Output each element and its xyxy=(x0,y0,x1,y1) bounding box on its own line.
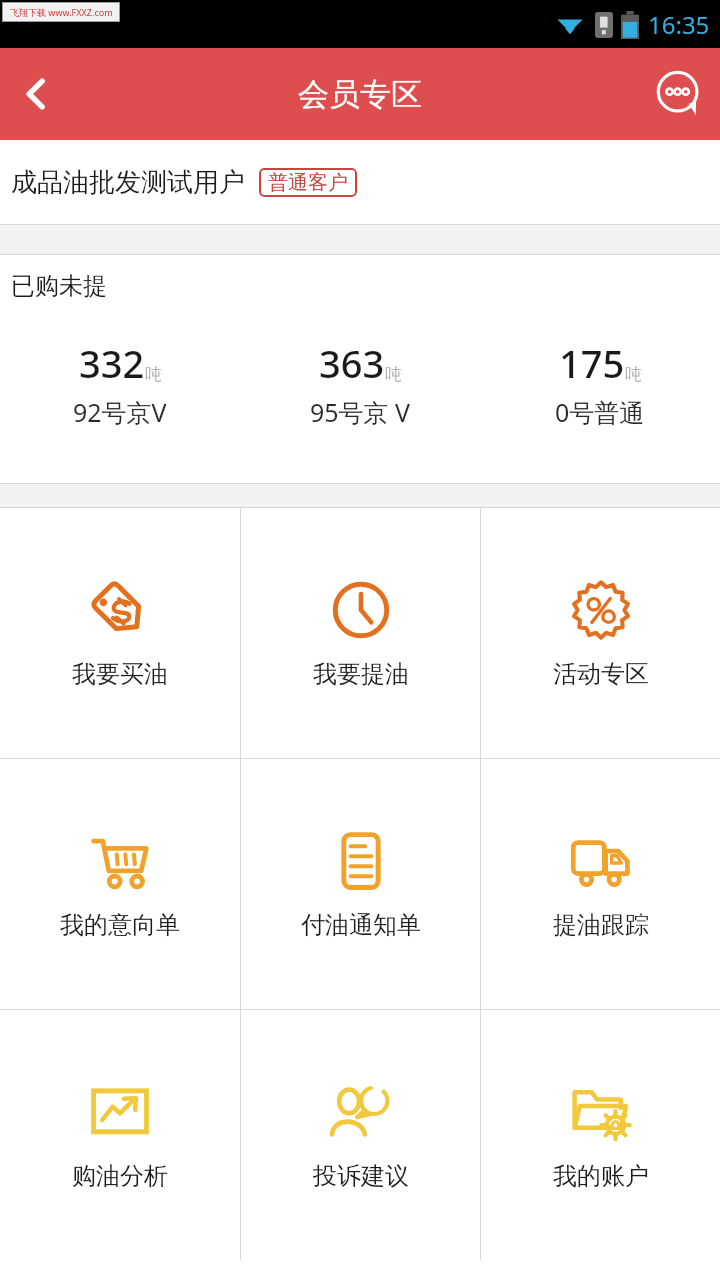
staticText: 363 xyxy=(319,337,385,389)
button[interactable]: 我要提油 xyxy=(241,508,480,758)
staticText: 投诉建议 xyxy=(313,1161,409,1191)
staticText: 会员专区 xyxy=(298,75,422,114)
staticText: 普通客户 xyxy=(268,170,348,195)
button[interactable]: 我要买油 xyxy=(0,508,240,758)
staticText: 购油分析 xyxy=(72,1161,168,1191)
staticText: 成品油批发测试用户 xyxy=(11,166,245,199)
staticText: 92号京V xyxy=(73,395,167,429)
button[interactable]: 活动专区 xyxy=(481,508,720,758)
button[interactable]: 我的意向单 xyxy=(0,759,240,1009)
staticText: 付油通知单 xyxy=(301,910,421,940)
button[interactable]: 付油通知单 xyxy=(241,759,480,1009)
staticText: 95号京 V xyxy=(310,395,411,429)
staticText: 活动专区 xyxy=(553,659,649,689)
button[interactable]: 购油分析 xyxy=(0,1010,240,1260)
staticText: 16:35 xyxy=(648,8,710,41)
staticText: 0号普通 xyxy=(555,395,645,429)
staticText: 吨 xyxy=(145,364,162,385)
button[interactable]: 我的账户 xyxy=(481,1010,720,1260)
staticText: 提油跟踪 xyxy=(553,910,649,940)
staticText: 已购未提 xyxy=(11,271,107,301)
staticText: 我的意向单 xyxy=(60,910,180,940)
button[interactable]: 投诉建议 xyxy=(241,1010,480,1260)
staticText: 我要买油 xyxy=(72,659,168,689)
staticText: 332 xyxy=(79,337,145,389)
button[interactable]: Messages xyxy=(648,63,710,125)
staticText: 我的账户 xyxy=(553,1161,649,1191)
staticText: 飞翔下载 www.FXXZ.com xyxy=(10,6,113,18)
button[interactable]: 提油跟踪 xyxy=(481,759,720,1009)
staticText: 我要提油 xyxy=(313,659,409,689)
staticText: 吨 xyxy=(625,364,642,385)
button[interactable]: Back xyxy=(6,64,66,124)
staticText: 吨 xyxy=(385,364,402,385)
staticText: 175 xyxy=(559,337,625,389)
